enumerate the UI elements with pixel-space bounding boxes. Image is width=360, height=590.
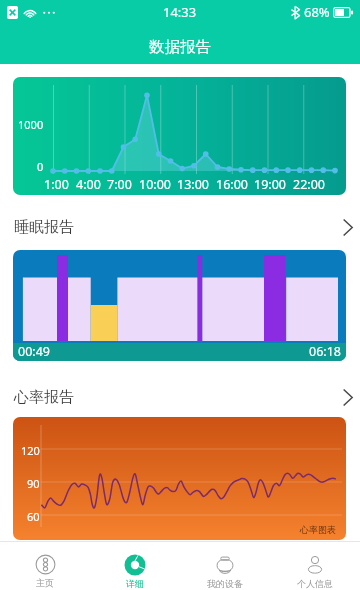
staticText: 心率图表 (300, 524, 336, 535)
button[interactable]: 00:49 (13, 250, 346, 361)
staticText: 68% (304, 3, 330, 21)
staticText: 个人信息 (297, 578, 333, 589)
staticText: 心率报告 (14, 388, 74, 407)
staticText: 主页 (36, 577, 54, 588)
other: 更多 (343, 389, 353, 406)
button[interactable]: 睡眠报告 (0, 195, 360, 250)
other: 我的设备 (214, 554, 236, 576)
button[interactable]: 主页 (0, 542, 90, 590)
staticText: 06:18 (309, 343, 341, 360)
staticText: 22:00 (293, 176, 325, 193)
button[interactable]: 详细 (90, 542, 180, 590)
staticText: 90 (27, 476, 40, 491)
staticText: 10:00 (139, 176, 171, 193)
other: 更多 (343, 219, 353, 236)
button[interactable]: 个人信息 (270, 542, 360, 590)
button[interactable]: 我的设备 (180, 542, 270, 590)
staticText: 0 (37, 159, 44, 174)
staticText: 60 (27, 509, 40, 524)
button[interactable]: 120 (13, 417, 346, 540)
staticText: 120 (21, 443, 40, 458)
staticText: 19:00 (254, 176, 286, 193)
staticText: 7:00 (107, 176, 132, 193)
other: 主页 (35, 554, 56, 575)
staticText: 14:33 (163, 3, 197, 21)
staticText: 00:49 (18, 343, 50, 360)
staticText: 1:00 (44, 176, 69, 193)
staticText: 详细 (126, 578, 144, 589)
staticText: 睡眠报告 (14, 218, 74, 237)
other: 个人信息 (304, 554, 326, 576)
staticText: 13:00 (177, 176, 209, 193)
staticText: 16:00 (216, 176, 248, 193)
other: 详细 (124, 554, 146, 576)
button[interactable]: 1000 (13, 77, 346, 195)
staticText: 1000 (18, 117, 44, 132)
staticText: 4:00 (76, 176, 101, 193)
staticText: 数据报告 (149, 37, 211, 57)
staticText: 我的设备 (207, 578, 243, 589)
button[interactable]: 心率报告 (0, 361, 360, 417)
